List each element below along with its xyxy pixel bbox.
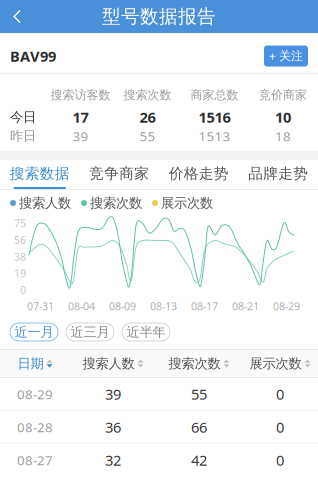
staticText: 关注	[279, 49, 303, 63]
staticText: 08-17	[191, 299, 218, 313]
staticText: 10	[275, 107, 291, 127]
staticText: 搜索数据	[10, 164, 70, 182]
staticText: 搜索人数	[19, 195, 71, 211]
staticText: 搜索次数	[168, 355, 220, 372]
staticText: 0	[276, 417, 284, 437]
staticText: 0	[276, 384, 284, 404]
staticText: 08-28	[17, 418, 53, 436]
staticText: 36	[105, 417, 121, 437]
staticText: 商家总数	[190, 88, 238, 102]
staticText: 展示次数	[161, 195, 213, 211]
staticText: 08-21	[232, 299, 259, 313]
staticText: 55	[139, 127, 155, 145]
staticText: 近三月	[70, 324, 109, 340]
staticText: 0	[20, 283, 26, 297]
staticText: 价格走势	[169, 164, 229, 182]
button[interactable]: 08-27	[0, 444, 318, 476]
staticText: 今日	[10, 109, 36, 125]
button[interactable]: 品牌走势	[238, 160, 318, 189]
staticText: 26	[139, 107, 155, 127]
staticText: 39	[105, 384, 121, 404]
button[interactable]: 日期	[0, 350, 70, 377]
button[interactable]: 近一月	[10, 323, 58, 341]
staticText: 08-27	[17, 451, 53, 469]
button[interactable]: 竞争商家	[79, 160, 159, 189]
staticText: 32	[105, 450, 121, 470]
staticText: 55	[191, 384, 207, 404]
staticText: 竞价商家	[259, 88, 307, 102]
staticText: 品牌走势	[248, 164, 308, 182]
staticText: 搜索次数	[123, 88, 171, 102]
staticText: BAV99	[10, 46, 56, 66]
staticText: 42	[191, 450, 207, 470]
staticText: 38	[14, 249, 26, 264]
button[interactable]: 搜索人数	[70, 350, 156, 377]
button[interactable]: 08-28	[0, 411, 318, 443]
staticText: 搜索人数	[82, 355, 134, 372]
staticText: 展示次数	[249, 355, 301, 372]
staticText: 08-29	[17, 385, 53, 403]
staticText: 39	[72, 127, 88, 145]
staticText: 日期	[17, 355, 43, 372]
button[interactable]: 价格走势	[159, 160, 238, 189]
staticText: 66	[191, 417, 207, 437]
button[interactable]: 近三月	[66, 323, 114, 341]
staticText: 型号数据报告	[102, 5, 216, 28]
staticText: 08-04	[68, 299, 95, 313]
button[interactable]: 展示次数	[242, 350, 318, 377]
staticText: 近一月	[14, 324, 53, 340]
staticText: 56	[14, 233, 26, 247]
staticText: 竞争商家	[89, 164, 149, 182]
staticText: 1513	[198, 127, 230, 145]
staticText: 0	[276, 450, 284, 470]
staticText: +	[269, 48, 276, 64]
staticText: 18	[275, 127, 291, 145]
button[interactable]: 近半年	[122, 323, 170, 341]
button[interactable]: 08-29	[0, 378, 318, 410]
button[interactable]: Back	[0, 0, 34, 33]
staticText: 08-13	[150, 299, 177, 313]
button[interactable]: +	[264, 45, 308, 66]
staticText: 08-29	[273, 299, 300, 313]
staticText: 17	[72, 107, 88, 127]
staticText: 昨日	[10, 128, 36, 144]
staticText: 近半年	[126, 324, 165, 340]
button[interactable]: 搜索次数	[156, 350, 242, 377]
staticText: 搜索次数	[90, 195, 142, 211]
staticText: 19	[14, 266, 26, 280]
staticText: 08-09	[109, 299, 136, 313]
staticText: 75	[14, 216, 26, 230]
staticText: 搜索访客数	[50, 88, 110, 102]
staticText: 1516	[198, 107, 230, 127]
staticText: 07-31	[27, 299, 54, 313]
button[interactable]: 搜索数据	[0, 160, 79, 189]
